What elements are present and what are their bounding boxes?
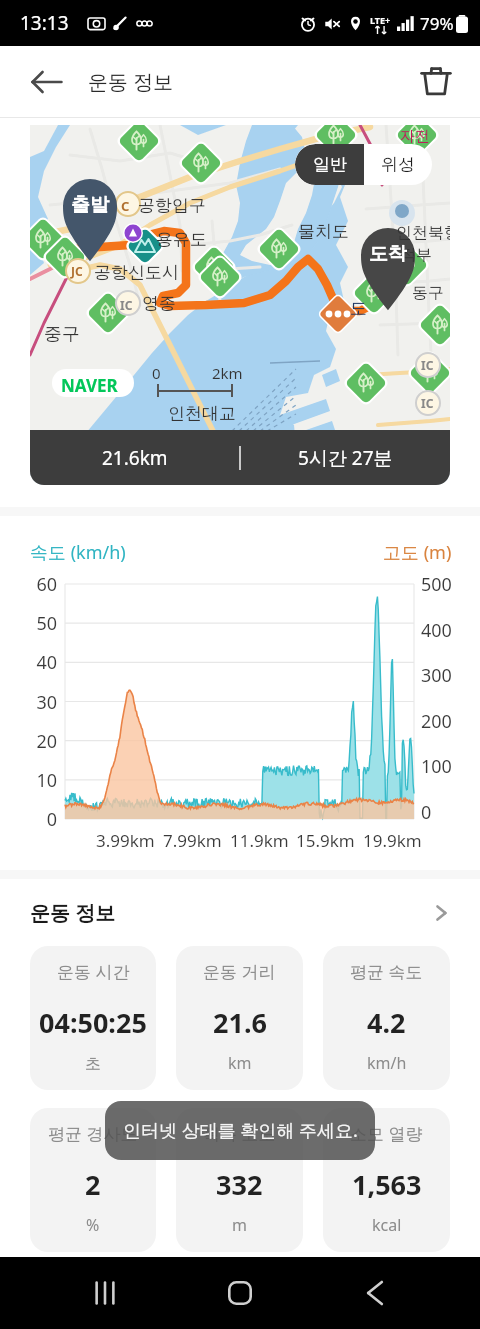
staticText: 도착 bbox=[369, 242, 407, 266]
staticText: 3.99km bbox=[96, 829, 155, 852]
button[interactable]: Recents bbox=[67, 1257, 143, 1329]
staticText: 13:13 bbox=[20, 10, 69, 36]
staticText: 21.6 bbox=[213, 1004, 267, 1041]
staticText: 초 bbox=[85, 1054, 101, 1074]
staticText: 자전 bbox=[400, 127, 430, 146]
staticText: m bbox=[232, 1214, 247, 1236]
staticText: 79% bbox=[420, 12, 454, 35]
button[interactable]: 위성 bbox=[364, 144, 432, 185]
staticText: 평균 경사도 bbox=[48, 1122, 138, 1145]
button[interactable]: Back bbox=[28, 63, 66, 101]
button[interactable]: 평균 속도 bbox=[323, 946, 450, 1090]
staticText: IC bbox=[120, 297, 133, 313]
staticText: 용유도 bbox=[156, 229, 207, 250]
button[interactable]: 소모 열량 bbox=[323, 1108, 450, 1252]
staticText: 소모 열량 bbox=[350, 1122, 423, 1145]
staticText: 332 bbox=[216, 1166, 263, 1203]
staticText: 운동 거리 bbox=[203, 960, 276, 983]
button[interactable]: 운동 정보 bbox=[0, 879, 480, 946]
staticText: JC bbox=[71, 263, 83, 279]
staticText: 인터넷 상태를 확인해 주세요. bbox=[123, 1118, 358, 1143]
button[interactable]: 공항입구 bbox=[30, 125, 450, 485]
staticText: 7.99km bbox=[163, 829, 222, 852]
staticText: 평균 속도 bbox=[350, 960, 423, 983]
staticText: 19.9km bbox=[363, 829, 422, 852]
staticText: 운동 시간 bbox=[57, 960, 130, 983]
staticText: 5시간 27분 bbox=[298, 445, 393, 471]
staticText: 10 bbox=[0, 768, 57, 793]
staticText: 0 bbox=[421, 800, 432, 825]
staticText: 물치도 bbox=[298, 221, 349, 242]
staticText: 400 bbox=[421, 618, 452, 643]
staticText: 중구 bbox=[44, 323, 80, 346]
staticText: 15.9km bbox=[296, 829, 355, 852]
staticText: km bbox=[228, 1052, 252, 1074]
staticText: C bbox=[121, 197, 130, 215]
staticText: 300 bbox=[421, 663, 452, 688]
button[interactable]: Back bbox=[337, 1257, 413, 1329]
staticText: IC bbox=[421, 395, 434, 411]
staticText: 04:50:25 bbox=[39, 1004, 147, 1041]
staticText: NAVER bbox=[61, 374, 118, 397]
staticText: 21.6km bbox=[102, 445, 168, 471]
staticText: 위성 bbox=[381, 154, 415, 175]
button[interactable]: 획득 고도 bbox=[176, 1108, 303, 1252]
staticText: 0 bbox=[152, 363, 161, 383]
button[interactable]: 평균 경사도 bbox=[30, 1108, 156, 1252]
staticText: km/h bbox=[367, 1052, 407, 1074]
staticText: % bbox=[86, 1214, 100, 1236]
staticText: 2km bbox=[212, 363, 243, 383]
staticText: 적부 bbox=[400, 245, 432, 265]
staticText: 200 bbox=[421, 709, 452, 734]
staticText: 공항입구 bbox=[138, 195, 206, 216]
staticText: 고도 (m) bbox=[383, 540, 452, 565]
staticText: 50 bbox=[0, 611, 57, 636]
staticText: 100 bbox=[421, 754, 452, 779]
staticText: 동구 bbox=[412, 283, 444, 303]
staticText: 11.9km bbox=[230, 829, 289, 852]
staticText: 도 bbox=[350, 298, 367, 319]
button[interactable]: 운동 거리 bbox=[176, 946, 303, 1090]
staticText: 영종 bbox=[142, 293, 176, 314]
staticText: 인천대교 bbox=[168, 403, 236, 424]
button[interactable]: Delete bbox=[418, 64, 454, 100]
staticText: 40 bbox=[0, 650, 57, 675]
staticText: 인천북항 bbox=[396, 223, 450, 243]
staticText: 30 bbox=[0, 690, 57, 715]
staticText: 20 bbox=[0, 729, 57, 754]
staticText: 획득 고도 bbox=[203, 1122, 276, 1145]
staticText: 출발 bbox=[71, 193, 109, 217]
staticText: 60 bbox=[0, 572, 57, 597]
staticText: 일반 bbox=[313, 154, 347, 175]
staticText: kcal bbox=[372, 1214, 402, 1236]
staticText: 2 bbox=[85, 1166, 101, 1203]
staticText: 속도 (km/h) bbox=[30, 540, 126, 565]
button[interactable]: 운동 시간 bbox=[30, 946, 156, 1090]
button[interactable]: Home bbox=[202, 1257, 278, 1329]
staticText: 운동 정보 bbox=[30, 899, 116, 926]
button[interactable]: 일반 bbox=[295, 144, 364, 185]
staticText: 1,563 bbox=[352, 1166, 422, 1203]
staticText: 운동 정보 bbox=[88, 68, 174, 95]
staticText: 500 bbox=[421, 572, 452, 597]
staticText: LTE+ bbox=[370, 14, 391, 26]
staticText: IC bbox=[421, 357, 434, 373]
staticText: 0 bbox=[0, 807, 57, 832]
staticText: 4.2 bbox=[367, 1004, 406, 1041]
staticText: 공항신도시 bbox=[94, 262, 179, 283]
